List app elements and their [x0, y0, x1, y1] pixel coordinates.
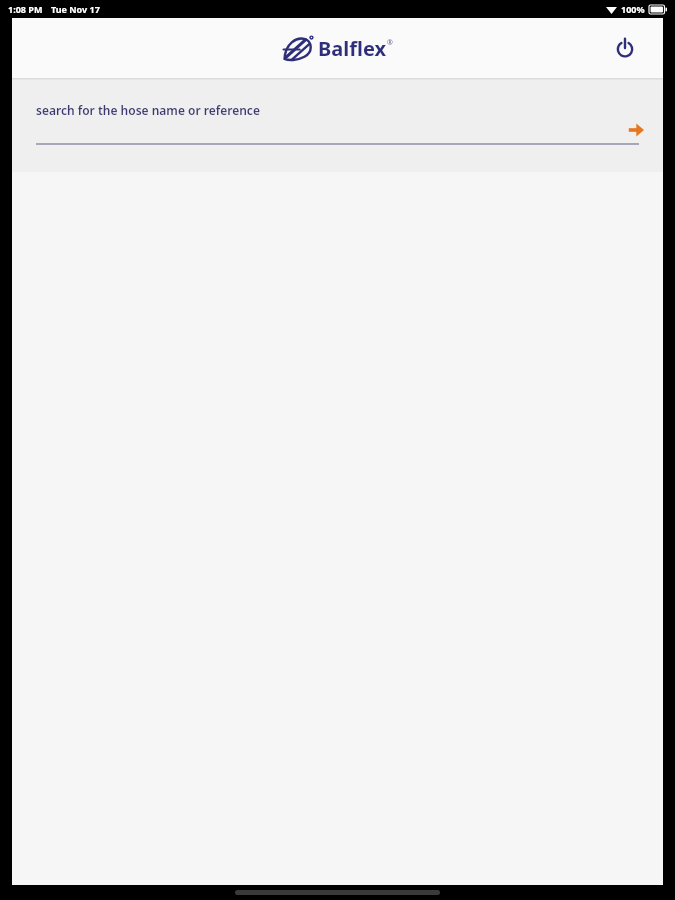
- staticText: 100%: [621, 3, 645, 15]
- staticText: ®: [387, 38, 393, 48]
- button[interactable]: Search: [623, 117, 649, 143]
- staticText: Tue Nov 17: [51, 3, 100, 15]
- button[interactable]: Power / Logout: [609, 32, 641, 64]
- staticText: 1:08 PM: [8, 3, 43, 15]
- button[interactable]: Balflex: [282, 35, 393, 62]
- staticText: search for the hose name or reference: [36, 102, 260, 118]
- staticText: Balflex: [318, 35, 387, 62]
